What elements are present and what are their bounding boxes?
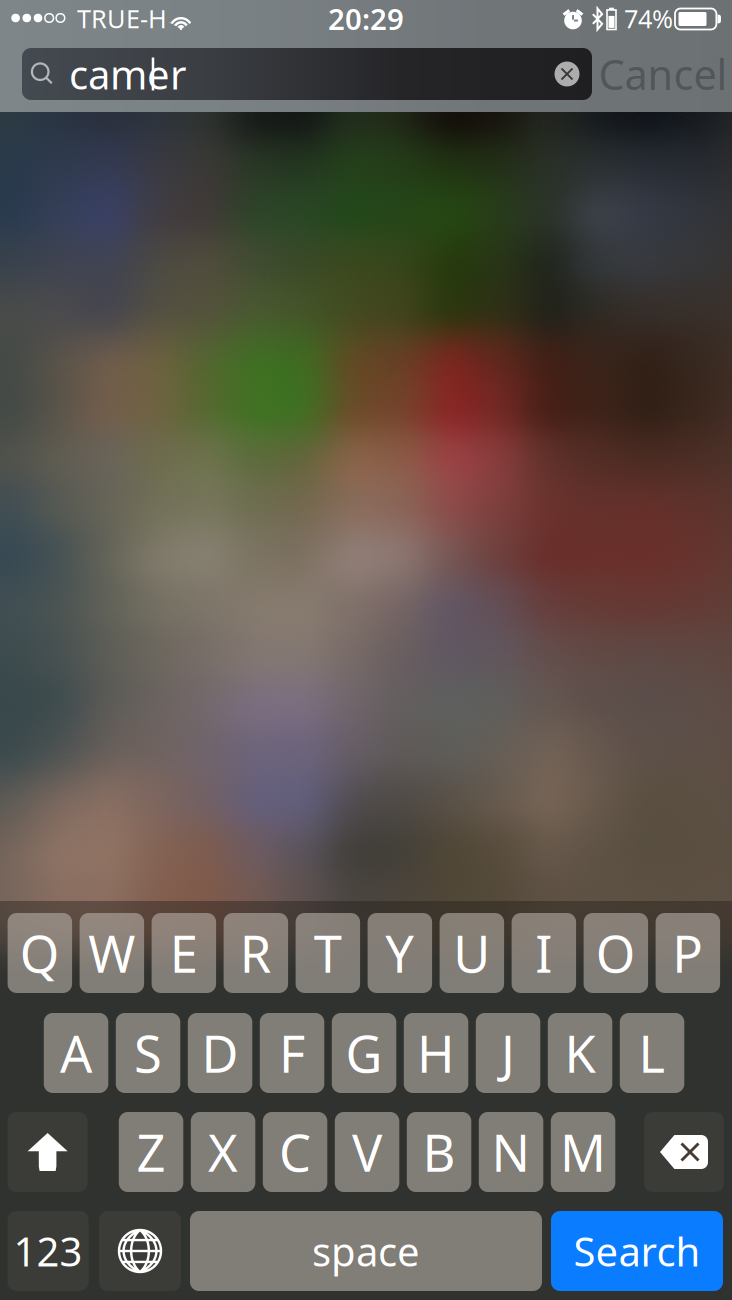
staticText: L — [638, 1019, 665, 1087]
staticText: Cancel — [598, 47, 727, 101]
button[interactable]: G — [332, 1013, 396, 1093]
button[interactable]: S — [116, 1013, 180, 1093]
staticText: I — [535, 919, 552, 987]
button[interactable]: K — [548, 1013, 612, 1093]
staticText: X — [208, 1118, 238, 1186]
staticText: 20:29 — [328, 0, 404, 38]
button[interactable]: T — [296, 913, 360, 993]
button[interactable]: Z — [119, 1112, 183, 1192]
staticText: P — [672, 919, 703, 987]
staticText: E — [170, 919, 198, 987]
button[interactable]: F — [260, 1013, 324, 1093]
button[interactable]: Q — [8, 913, 72, 993]
button[interactable]: H — [404, 1013, 468, 1093]
button[interactable]: Y — [368, 913, 432, 993]
button[interactable]: E — [152, 913, 216, 993]
staticText: C — [279, 1118, 311, 1186]
staticText: Search — [573, 1224, 700, 1277]
staticText: V — [352, 1118, 382, 1186]
staticText: B — [423, 1118, 456, 1186]
button[interactable]: P — [656, 913, 720, 993]
button[interactable]: D — [188, 1013, 252, 1093]
button[interactable]: U — [440, 913, 504, 993]
staticText: TRUE-H — [77, 2, 167, 35]
staticText: T — [314, 919, 342, 987]
button[interactable]: A — [44, 1013, 108, 1093]
button[interactable] — [99, 1211, 181, 1291]
button[interactable]: J — [476, 1013, 540, 1093]
button[interactable]: L — [620, 1013, 684, 1093]
staticText: Z — [137, 1118, 166, 1186]
staticText: 74% — [624, 2, 673, 35]
staticText: J — [501, 1019, 515, 1087]
staticText: Q — [20, 919, 60, 987]
button[interactable]: Cancel — [588, 53, 732, 95]
staticText: A — [60, 1019, 92, 1087]
button[interactable]: Search — [551, 1211, 723, 1291]
button[interactable]: 123 — [8, 1211, 89, 1291]
staticText: M — [560, 1118, 606, 1186]
button[interactable]: I — [512, 913, 576, 993]
button[interactable]: O — [584, 913, 648, 993]
button[interactable]: camer — [22, 48, 592, 100]
button[interactable] — [644, 1112, 724, 1192]
staticText: S — [134, 1019, 162, 1087]
button[interactable]: N — [479, 1112, 543, 1192]
staticText: Y — [385, 919, 414, 987]
staticText: O — [596, 919, 636, 987]
staticText: U — [453, 919, 490, 987]
button[interactable]: W — [80, 913, 144, 993]
staticText: N — [492, 1118, 531, 1186]
staticText: F — [279, 1019, 305, 1087]
button[interactable] — [8, 1112, 88, 1192]
staticText: K — [564, 1019, 595, 1087]
staticText: camer — [69, 47, 187, 100]
button[interactable]: C — [263, 1112, 327, 1192]
button[interactable]: X — [191, 1112, 255, 1192]
staticText: space — [312, 1224, 420, 1277]
staticText: R — [240, 919, 272, 987]
staticText: W — [88, 919, 135, 987]
button[interactable]: R — [224, 913, 288, 993]
staticText: G — [346, 1019, 383, 1087]
staticText: 123 — [14, 1224, 83, 1277]
staticText: D — [202, 1019, 239, 1087]
button[interactable]: space — [190, 1211, 542, 1291]
staticText: H — [417, 1019, 455, 1087]
button[interactable]: M — [551, 1112, 615, 1192]
button[interactable]: V — [335, 1112, 399, 1192]
button[interactable]: B — [407, 1112, 471, 1192]
